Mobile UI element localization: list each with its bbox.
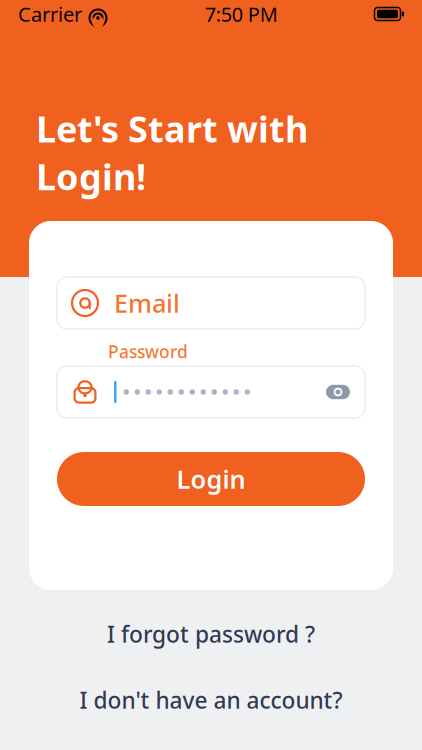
staticText: Password: [108, 340, 188, 363]
button[interactable]: [57, 366, 365, 418]
button[interactable]: I forgot password ?: [89, 610, 333, 658]
button[interactable]: Login: [57, 452, 365, 506]
staticText: Carrier: [18, 1, 82, 27]
button[interactable]: I don't have an account?: [61, 676, 360, 724]
staticText: I forgot password ?: [107, 619, 315, 649]
staticText: Login: [176, 462, 245, 496]
staticText: Let's Start with Login!: [36, 105, 308, 200]
staticText: 7:50 PM: [205, 1, 278, 27]
staticText: Email: [114, 286, 180, 320]
button[interactable]: Email: [57, 277, 365, 329]
staticText: I don't have an account?: [79, 685, 342, 715]
